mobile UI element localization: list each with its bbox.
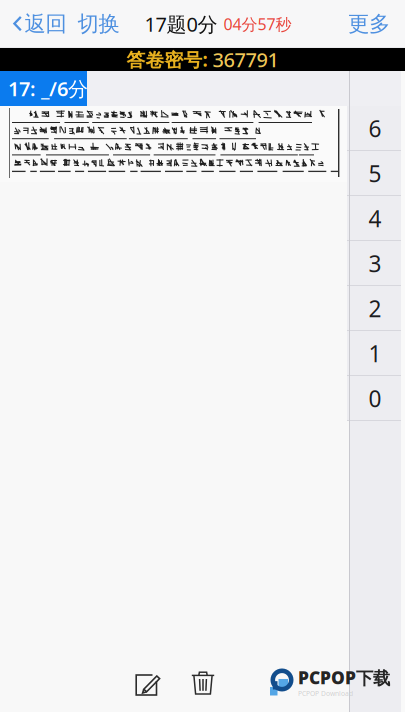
button[interactable]: 0	[347, 376, 403, 421]
staticText: 返回	[24, 11, 66, 37]
staticText: 2	[368, 293, 381, 323]
staticText: 367791	[207, 46, 278, 73]
staticText: 3	[368, 248, 381, 278]
staticText: 答卷密号:	[126, 47, 207, 72]
staticText: 切换	[77, 11, 119, 37]
staticText: 17题0分	[144, 11, 217, 37]
staticText: PCPOP Download	[298, 689, 353, 698]
staticText: 0	[368, 383, 381, 413]
staticText: 4	[368, 203, 381, 233]
button[interactable]: 4	[347, 196, 403, 241]
button[interactable]: 3	[347, 241, 403, 286]
button[interactable]: 切换	[70, 0, 126, 48]
staticText: 更多	[348, 11, 390, 37]
button[interactable]: 2	[347, 286, 403, 331]
button[interactable]: 1	[347, 331, 403, 376]
staticText: 1	[368, 338, 381, 368]
staticText: 6	[368, 113, 381, 143]
button[interactable]: Delete answer	[188, 665, 218, 701]
button[interactable]: 返回	[0, 0, 70, 48]
button[interactable]: 17: _/6分	[0, 71, 87, 106]
button[interactable]: 更多	[348, 0, 405, 48]
button[interactable]: Edit answer	[131, 667, 165, 703]
staticText: PCPOP下载	[298, 666, 390, 689]
staticText: 04分57秒	[223, 13, 291, 35]
staticText: 5	[368, 158, 381, 188]
button[interactable]: 6	[347, 106, 403, 151]
button[interactable]: 5	[347, 151, 403, 196]
staticText: 17: _/6分	[8, 75, 88, 102]
